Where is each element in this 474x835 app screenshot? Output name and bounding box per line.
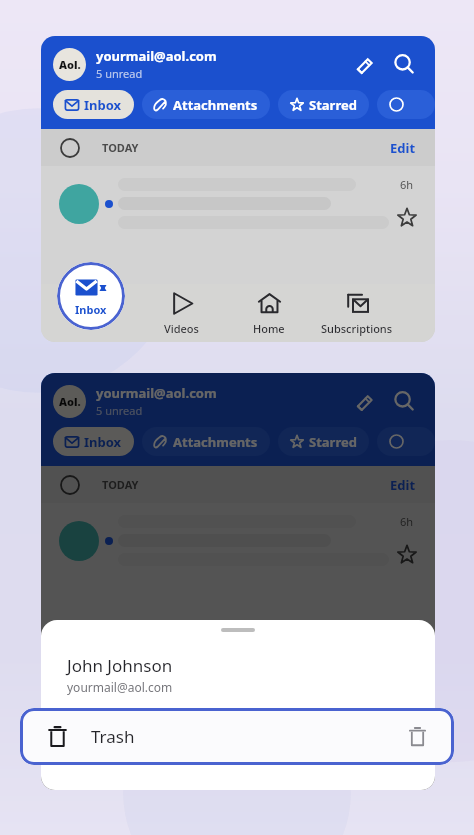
staticText: TODAY: [102, 477, 139, 492]
button[interactable]: Subscriptions: [313, 284, 401, 342]
button[interactable]: Search: [387, 384, 421, 418]
staticText: Inbox: [84, 96, 122, 114]
staticText: Starred: [309, 96, 357, 114]
staticText: Attachments: [173, 433, 258, 451]
staticText: Home: [253, 321, 285, 336]
button[interactable]: Inbox: [57, 262, 125, 330]
staticText: John Johnson: [67, 654, 173, 677]
staticText: Edit: [390, 139, 416, 157]
button[interactable]: Compose: [347, 384, 381, 418]
staticText: 6h: [400, 514, 414, 529]
staticText: 5 unread: [96, 403, 143, 418]
button[interactable]: 6h: [41, 166, 435, 241]
button[interactable]: Compose: [347, 47, 381, 81]
button[interactable]: Videos: [137, 732, 225, 790]
button[interactable]: Attachments: [142, 427, 270, 456]
staticText: Edit: [390, 476, 416, 494]
staticText: yourmail@aol.com: [96, 47, 217, 65]
button[interactable]: Inbox: [53, 90, 134, 119]
button[interactable]: Starred: [278, 427, 369, 456]
staticText: Videos: [164, 321, 199, 336]
staticText: Attachments: [173, 96, 258, 114]
button[interactable]: Subscriptions: [313, 732, 401, 790]
staticText: 5 unread: [96, 66, 143, 81]
button[interactable]: Inbox: [53, 427, 134, 456]
staticText: Trash: [91, 725, 135, 748]
button[interactable]: Videos: [137, 284, 225, 342]
staticText: Subscriptions: [321, 321, 393, 336]
staticText: 6h: [400, 177, 414, 192]
staticText: Starred: [309, 433, 357, 451]
button[interactable]: Account: [53, 48, 86, 81]
staticText: Aol.: [59, 394, 81, 409]
staticText: Inbox: [75, 302, 107, 317]
button[interactable]: More filters: [377, 90, 435, 119]
button[interactable]: Trash: [20, 708, 454, 765]
button[interactable]: Starred: [278, 90, 369, 119]
staticText: yourmail@aol.com: [96, 384, 217, 402]
button[interactable]: Edit: [388, 472, 418, 498]
button[interactable]: Home: [225, 284, 313, 342]
button[interactable]: Home: [225, 732, 313, 790]
button[interactable]: More filters: [377, 427, 435, 456]
button[interactable]: Star: [395, 543, 419, 567]
staticText: TODAY: [102, 140, 139, 155]
staticText: Inbox: [84, 433, 122, 451]
staticText: yourmail@aol.com: [67, 679, 173, 695]
button[interactable]: Edit: [388, 135, 418, 161]
button[interactable]: Attachments: [142, 90, 270, 119]
button[interactable]: Account: [53, 385, 86, 418]
staticText: Aol.: [59, 57, 81, 72]
button[interactable]: Star: [395, 206, 419, 230]
button[interactable]: Select all: [58, 136, 82, 160]
button[interactable]: 6h: [41, 503, 435, 578]
button[interactable]: Search: [387, 47, 421, 81]
button[interactable]: Select all: [58, 473, 82, 497]
